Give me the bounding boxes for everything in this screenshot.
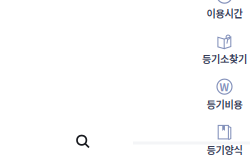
staticText: 등기양식 (206, 142, 242, 157)
button[interactable]: 이용시간 (198, 0, 250, 27)
staticText: 이용시간 (206, 6, 242, 20)
staticText: W (219, 79, 229, 94)
staticText: 등기소찾기 (202, 51, 247, 66)
button[interactable]: 등기소찾기 (198, 27, 250, 72)
button[interactable]: W (198, 72, 250, 118)
staticText: 등기비용 (206, 97, 242, 111)
button[interactable]: Search (70, 128, 96, 154)
button[interactable]: 등기양식 (198, 118, 250, 157)
